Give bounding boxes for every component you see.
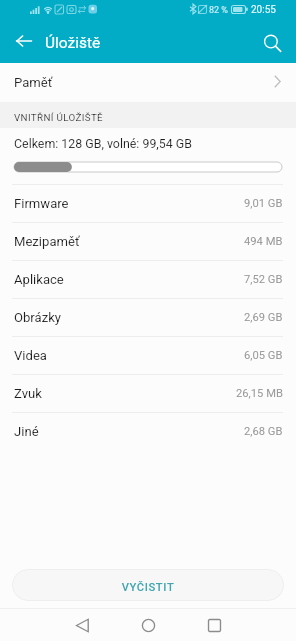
staticText: VNITŘNÍ ÚLOŽIŠTĚ	[14, 112, 104, 123]
button[interactable]: Aplikace	[0, 261, 296, 298]
staticText: Aplikace	[14, 272, 64, 287]
staticText: Videa	[14, 348, 47, 363]
staticText: 26,15 MB	[236, 387, 283, 400]
button[interactable]: Back	[5, 22, 42, 59]
button[interactable]: Obrázky	[0, 299, 296, 336]
staticText: 2,68 GB	[244, 425, 283, 438]
button[interactable]: Recents	[198, 609, 230, 641]
button[interactable]: Jiné	[0, 413, 296, 450]
button[interactable]: Paměť	[0, 63, 296, 102]
button[interactable]: Home	[132, 609, 164, 641]
staticText: 82 %	[209, 5, 228, 16]
staticText: 9,01 GB	[244, 197, 283, 210]
staticText: 494 MB	[244, 235, 283, 248]
button[interactable]: Back	[66, 609, 98, 641]
button[interactable]: VYČISTIT	[12, 569, 284, 601]
button[interactable]: Search	[253, 24, 291, 62]
staticText: Paměť	[14, 75, 53, 90]
staticText: Zvuk	[14, 386, 42, 401]
button[interactable]: Zvuk	[0, 375, 296, 412]
staticText: 20:55	[251, 4, 276, 16]
button[interactable]: Mezipaměť	[0, 223, 296, 260]
staticText: Celkem: 128 GB, volné: 99,54 GB	[14, 136, 192, 151]
staticText: 7,52 GB	[244, 273, 283, 286]
staticText: Firmware	[14, 196, 69, 211]
staticText: Úložiště	[45, 34, 101, 52]
staticText: VYČISTIT	[12, 581, 284, 594]
button[interactable]: Videa	[0, 337, 296, 374]
staticText: Mezipaměť	[14, 234, 80, 249]
staticText: 6,05 GB	[244, 349, 283, 362]
staticText: Jiné	[14, 424, 39, 439]
staticText: Obrázky	[14, 310, 61, 325]
staticText: 2,69 GB	[244, 311, 283, 324]
button[interactable]: Firmware	[0, 185, 296, 222]
